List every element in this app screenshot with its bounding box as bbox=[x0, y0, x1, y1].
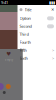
button[interactable]: Third bbox=[17, 30, 56, 38]
staticText: > bbox=[52, 48, 54, 53]
button[interactable]: Second bbox=[17, 22, 56, 30]
button[interactable]: Fourth bbox=[17, 38, 56, 46]
button[interactable]: Option bbox=[17, 14, 56, 22]
staticText: 9:41 bbox=[1, 0, 8, 5]
button[interactable]: Fifth bbox=[17, 46, 56, 54]
staticText: Sixth bbox=[19, 56, 27, 61]
staticText: Option bbox=[19, 16, 30, 21]
staticText: Fourth bbox=[19, 40, 30, 45]
staticText: ✕ bbox=[51, 7, 54, 12]
staticText: Second bbox=[19, 24, 31, 29]
staticText: > bbox=[52, 56, 54, 61]
staticText: ▮▮▮ bbox=[49, 0, 55, 5]
staticText: Title bbox=[24, 7, 31, 12]
staticText: Fifth bbox=[19, 48, 26, 53]
staticText: empty bbox=[5, 58, 13, 62]
button[interactable]: Sixth bbox=[17, 54, 56, 62]
staticText: ♥ bbox=[6, 51, 11, 57]
staticText: Third bbox=[19, 32, 28, 37]
